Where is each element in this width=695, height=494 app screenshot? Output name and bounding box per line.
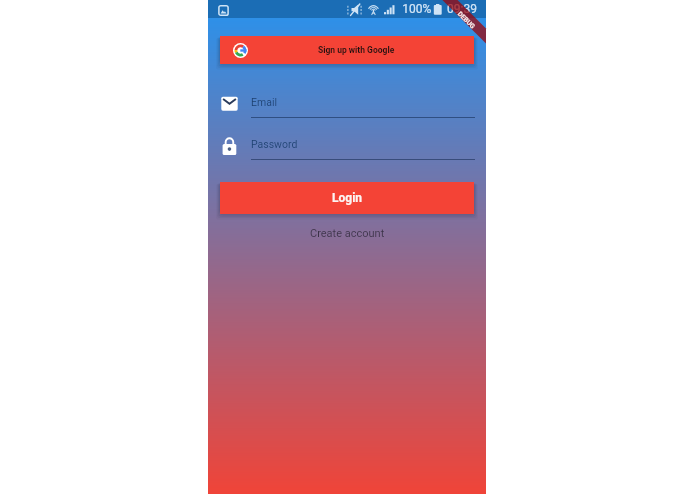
staticText: Sign up with Google [318,45,395,55]
staticText: Email [251,96,277,108]
button[interactable]: Password [221,138,475,160]
staticText: Password [251,138,298,150]
staticText: Login [332,191,363,205]
button[interactable]: Sign up with Google [220,36,474,64]
other: Debug banner [426,0,486,60]
button[interactable]: Email [221,96,475,118]
button[interactable]: Create account [304,224,391,243]
button[interactable]: Login [220,182,474,214]
